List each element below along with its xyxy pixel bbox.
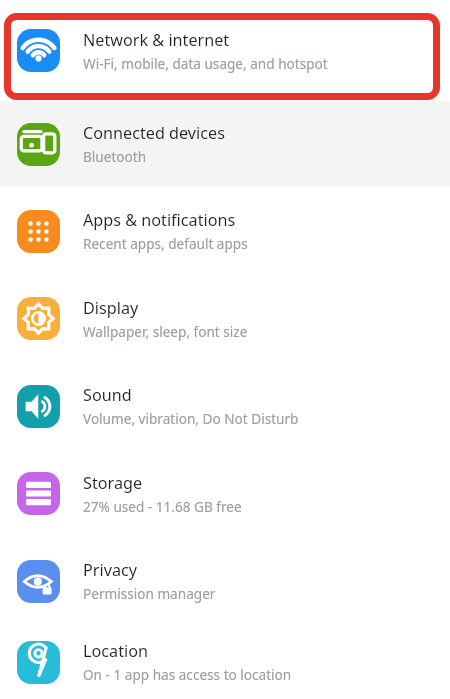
staticText: Wi-Fi, mobile, data usage, and hotspot (83, 54, 328, 73)
staticText: Wallpaper, sleep, font size (83, 322, 248, 341)
staticText: Bluetooth (83, 147, 147, 166)
other: Highlighted: Network & internet (4, 13, 440, 100)
staticText: Apps & notifications (83, 209, 236, 231)
staticText: Volume, vibration, Do Not Disturb (83, 409, 299, 428)
staticText: 27% used - 11.68 GB free (83, 497, 242, 516)
button[interactable]: Network & internet (0, 0, 450, 101)
button[interactable]: Location (0, 625, 450, 699)
staticText: Network & internet (83, 29, 230, 51)
staticText: Recent apps, default apps (83, 234, 248, 253)
staticText: Permission manager (83, 584, 216, 603)
staticText: Sound (83, 384, 132, 406)
staticText: On - 1 app has access to location (83, 665, 292, 684)
button[interactable]: Privacy (0, 537, 450, 625)
button[interactable]: Sound (0, 362, 450, 450)
button[interactable]: Connected devices (0, 101, 450, 187)
button[interactable]: Storage (0, 450, 450, 537)
button[interactable]: Apps & notifications (0, 187, 450, 275)
staticText: Privacy (83, 559, 137, 581)
staticText: Connected devices (83, 122, 225, 144)
staticText: Display (83, 297, 139, 319)
staticText: Location (83, 640, 148, 662)
staticText: Storage (83, 472, 143, 494)
button[interactable]: Display (0, 275, 450, 362)
